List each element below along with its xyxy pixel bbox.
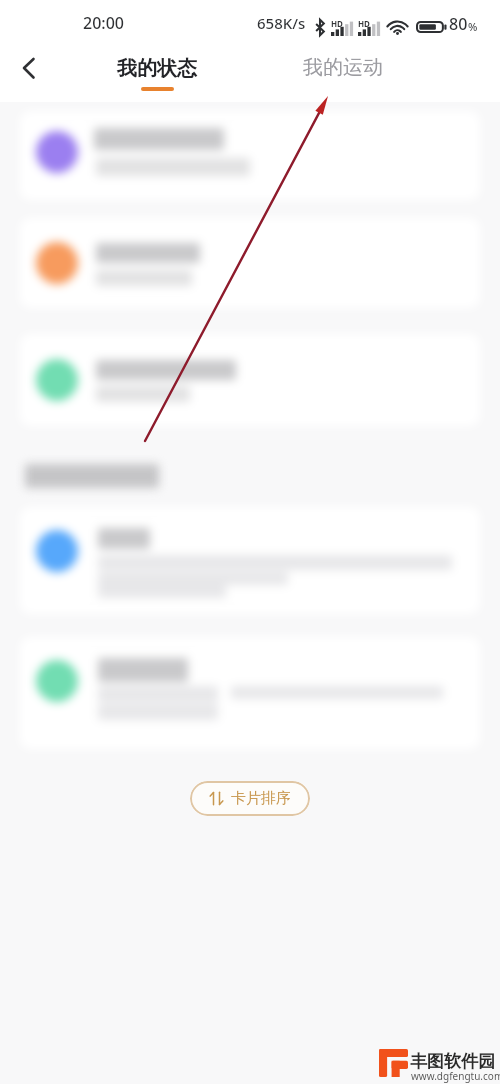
button[interactable]: 卡片排序: [190, 781, 310, 816]
staticText: 卡片排序: [231, 789, 291, 808]
staticText: www.dgfengtu.com: [411, 1069, 500, 1083]
button[interactable]: 我的状态: [107, 46, 207, 102]
button[interactable]: 我的运动: [292, 46, 392, 102]
staticText: HD: [358, 18, 370, 29]
staticText: %: [468, 19, 478, 34]
staticText: 80: [449, 13, 468, 35]
staticText: 我的状态: [117, 56, 197, 81]
staticText: 20:00: [83, 12, 124, 34]
staticText: HD: [331, 18, 343, 29]
staticText: 我的运动: [303, 55, 383, 80]
button[interactable]: Back: [6, 46, 52, 90]
staticText: 丰图软件园: [410, 1051, 495, 1072]
staticText: 658K/s: [257, 13, 306, 33]
